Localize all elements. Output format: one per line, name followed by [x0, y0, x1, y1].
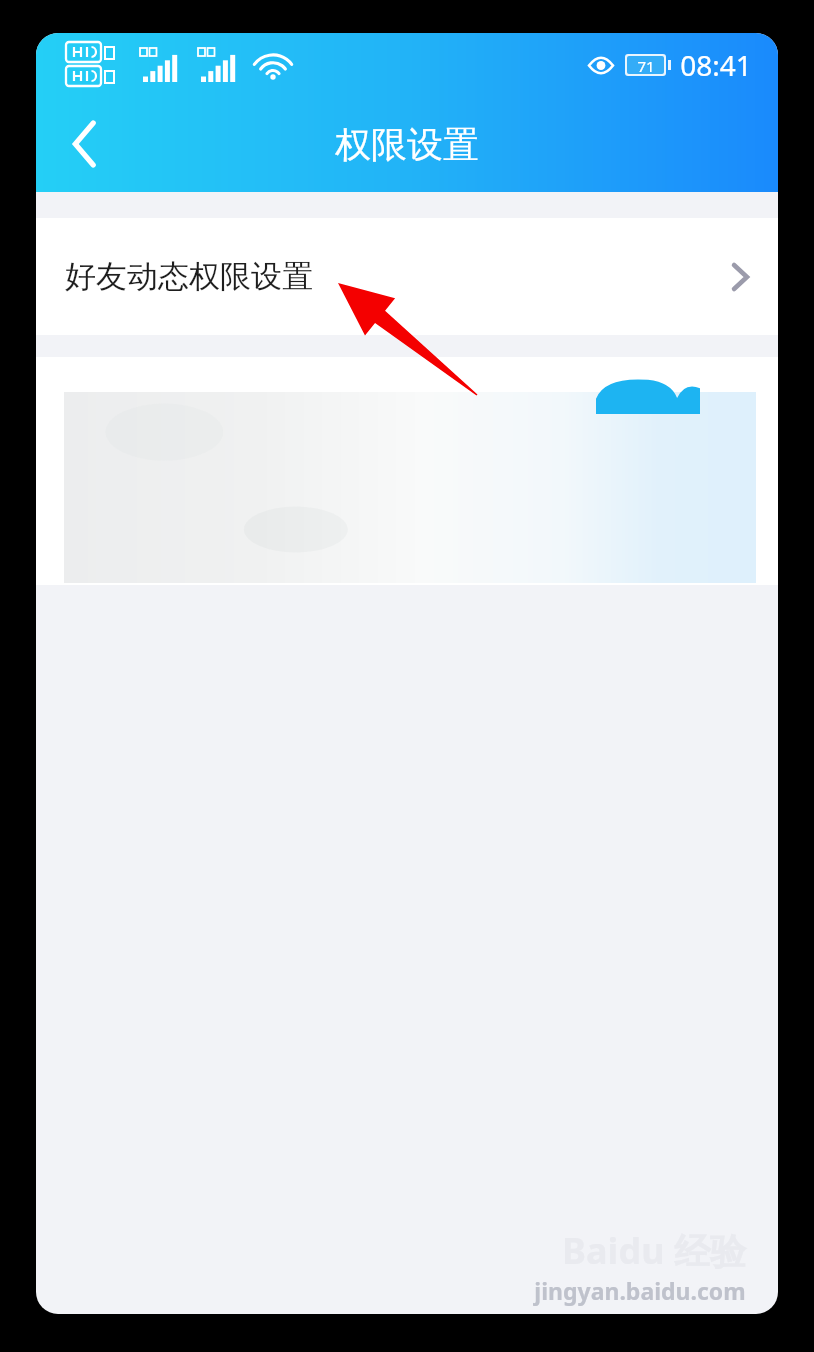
staticText: Baidu 经验	[562, 1226, 746, 1275]
button[interactable]: 好友动态权限设置	[36, 218, 778, 335]
staticText: 权限设置	[335, 122, 479, 167]
staticText: 好友动态权限设置	[65, 257, 313, 296]
staticText: jingyan.baidu.com	[534, 1275, 746, 1306]
staticText: 08:41	[680, 46, 752, 84]
button[interactable]: 返回	[36, 96, 132, 192]
staticText: 71	[637, 56, 655, 74]
